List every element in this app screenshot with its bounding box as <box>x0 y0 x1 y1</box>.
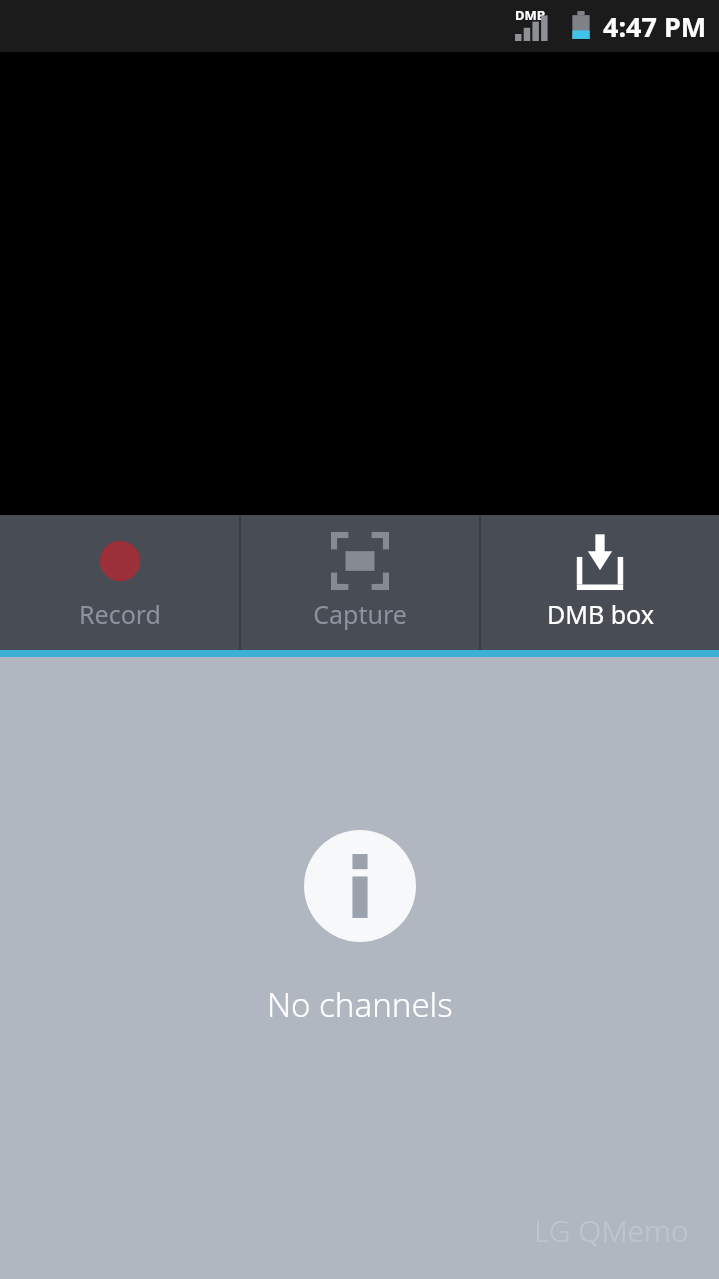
staticText: LG QMemo <box>534 1210 689 1251</box>
staticText: DMB <box>515 6 546 24</box>
staticText: Record <box>79 597 161 631</box>
button[interactable]: Record <box>0 515 239 650</box>
button[interactable]: Capture <box>241 515 479 650</box>
staticText: Capture <box>313 597 407 631</box>
staticText: DMB box <box>547 597 654 631</box>
staticText: 4:47 PM <box>603 8 707 45</box>
button[interactable]: DMB box <box>481 515 719 650</box>
staticText: No channels <box>267 982 453 1027</box>
